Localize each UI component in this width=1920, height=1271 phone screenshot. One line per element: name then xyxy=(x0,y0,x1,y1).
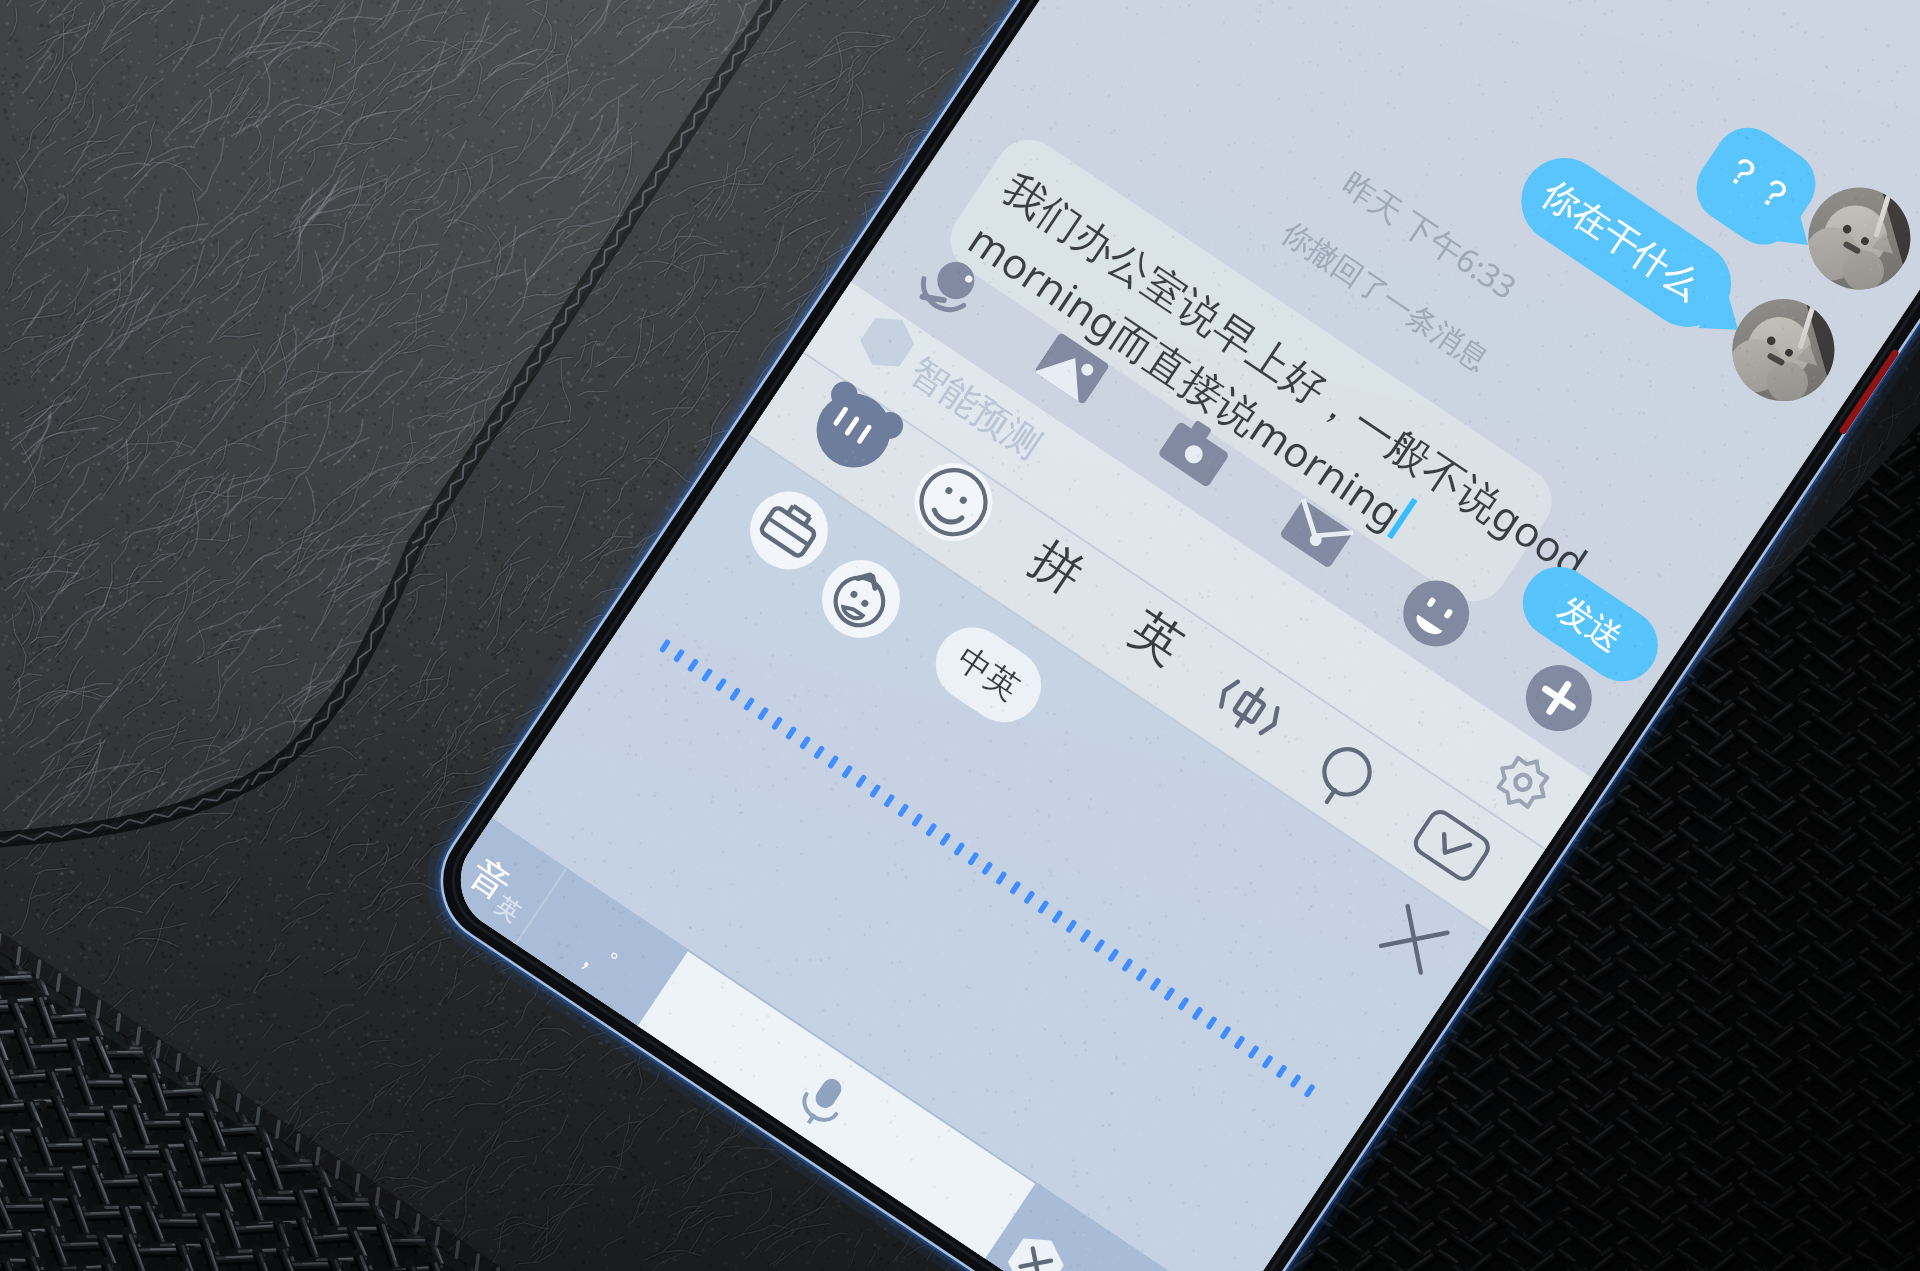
button[interactable]: Hide keyboard xyxy=(997,1225,1077,1271)
button[interactable]: Voice message xyxy=(903,239,995,331)
button[interactable] xyxy=(804,282,1593,849)
button[interactable]: Emoticons xyxy=(900,450,1006,556)
button[interactable] xyxy=(517,869,687,1025)
button[interactable] xyxy=(441,818,567,944)
button[interactable] xyxy=(1103,585,1209,691)
button[interactable]: Select xyxy=(1399,795,1505,901)
button[interactable] xyxy=(1508,553,1671,695)
button[interactable]: Stickers xyxy=(807,545,915,653)
button[interactable]: Toolbox xyxy=(735,476,843,584)
button[interactable]: Video message xyxy=(1271,487,1363,579)
button[interactable]: Settings xyxy=(1479,738,1567,826)
button[interactable]: Photo xyxy=(1026,324,1118,416)
button[interactable]: Baidu input method xyxy=(803,379,905,481)
button[interactable]: Emoji xyxy=(1390,567,1482,659)
button[interactable] xyxy=(921,613,1055,737)
button[interactable]: Space xyxy=(637,951,1035,1259)
button[interactable]: Add attachment xyxy=(1513,652,1605,744)
button[interactable]: Close panel xyxy=(1374,901,1454,981)
button[interactable]: Camera xyxy=(1149,406,1241,498)
button[interactable]: Search xyxy=(1292,724,1398,830)
button[interactable] xyxy=(1004,515,1110,621)
button[interactable]: Chinese punctuation xyxy=(1196,655,1302,761)
